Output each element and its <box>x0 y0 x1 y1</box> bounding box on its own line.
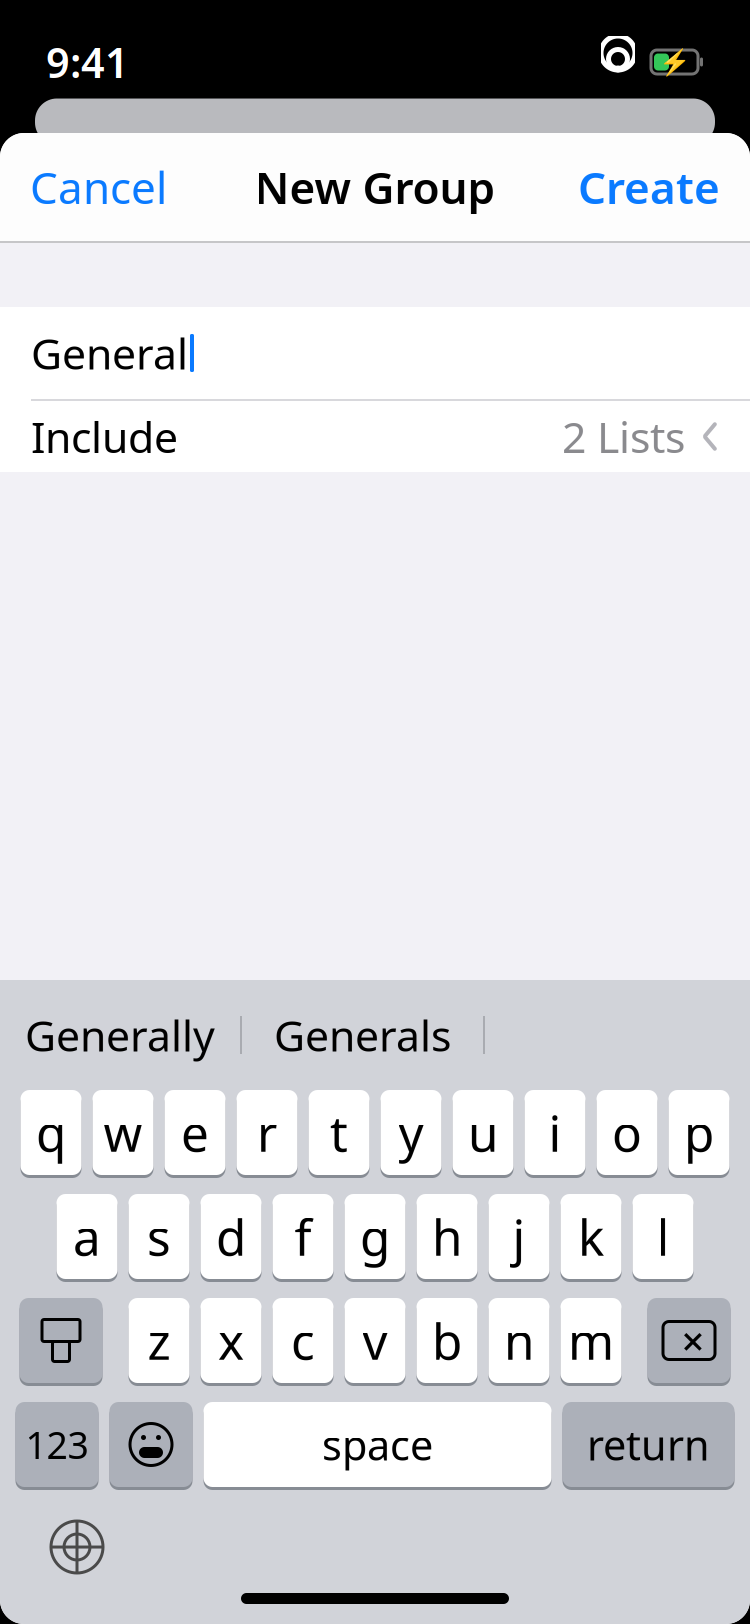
button[interactable]: 123 <box>15 1402 98 1490</box>
button[interactable]: y <box>380 1090 441 1178</box>
button[interactable]: j <box>488 1194 549 1282</box>
staticText: j <box>512 1204 525 1269</box>
button[interactable]: Generals <box>242 998 483 1072</box>
staticText: space <box>322 1417 433 1472</box>
button[interactable]: o <box>596 1090 657 1178</box>
staticText: 2 Lists <box>562 408 685 465</box>
staticText: o <box>612 1100 642 1165</box>
button[interactable]: Include <box>0 401 750 472</box>
button[interactable]: f <box>272 1194 333 1282</box>
button[interactable]: Create <box>548 136 750 238</box>
staticText: b <box>432 1308 462 1373</box>
button[interactable]: c <box>272 1298 333 1386</box>
staticText: l <box>656 1204 669 1269</box>
staticText: t <box>330 1100 348 1165</box>
staticText: g <box>360 1204 390 1269</box>
staticText: New Group <box>254 158 495 216</box>
button[interactable]: g <box>344 1194 405 1282</box>
staticText: y <box>398 1100 423 1165</box>
staticText: Generally <box>25 1007 215 1063</box>
button[interactable]: r <box>236 1090 297 1178</box>
staticText: s <box>147 1204 171 1269</box>
button[interactable]: h <box>416 1194 477 1282</box>
staticText: n <box>504 1308 534 1373</box>
staticText: c <box>291 1308 315 1373</box>
button[interactable]: Delete <box>647 1298 730 1386</box>
staticText: d <box>216 1204 246 1269</box>
button[interactable]: w <box>92 1090 153 1178</box>
button[interactable]: b <box>416 1298 477 1386</box>
button[interactable]: z <box>128 1298 189 1386</box>
staticText: m <box>568 1308 614 1373</box>
button[interactable]: Generally <box>0 998 240 1072</box>
button[interactable]: n <box>488 1298 549 1386</box>
staticText: e <box>181 1100 209 1165</box>
staticText: × <box>681 1314 704 1367</box>
staticText: v <box>362 1308 387 1373</box>
staticText: f <box>294 1204 311 1269</box>
staticText: i <box>548 1100 561 1165</box>
staticText: Include <box>31 408 178 465</box>
button[interactable]: space <box>203 1402 551 1490</box>
button[interactable]: x <box>200 1298 261 1386</box>
staticText: Create <box>578 158 720 216</box>
staticText: q <box>36 1100 66 1165</box>
button[interactable]: p <box>668 1090 729 1178</box>
button[interactable]: t <box>308 1090 369 1178</box>
staticText: a <box>73 1204 101 1269</box>
staticText: z <box>147 1308 170 1373</box>
staticText: k <box>578 1204 604 1269</box>
staticText: w <box>103 1100 142 1165</box>
staticText: Generals <box>274 1007 451 1063</box>
staticText: 123 <box>25 1420 88 1469</box>
button[interactable]: d <box>200 1194 261 1282</box>
staticText: ⚡ <box>658 47 690 76</box>
staticText: u <box>468 1100 498 1165</box>
button[interactable]: Next keyboard <box>42 1512 112 1582</box>
staticText: return <box>587 1417 710 1472</box>
button[interactable]: v <box>344 1298 405 1386</box>
button[interactable]: Cancel <box>0 136 197 238</box>
button[interactable]: l <box>632 1194 693 1282</box>
staticText: p <box>684 1100 714 1165</box>
button[interactable]: m <box>560 1298 621 1386</box>
button[interactable]: q <box>20 1090 81 1178</box>
button[interactable]: i <box>524 1090 585 1178</box>
staticText: h <box>432 1204 462 1269</box>
staticText: General <box>31 325 188 381</box>
staticText: 9:41 <box>46 35 129 89</box>
button[interactable]: Emoji <box>109 1402 192 1490</box>
button[interactable]: return <box>562 1402 734 1490</box>
staticText: Cancel <box>30 158 167 216</box>
staticText: x <box>218 1308 244 1373</box>
button[interactable]: a <box>56 1194 117 1282</box>
button[interactable]: e <box>164 1090 225 1178</box>
button[interactable]: u <box>452 1090 513 1178</box>
button[interactable]: Shift <box>19 1298 102 1386</box>
button[interactable]: k <box>560 1194 621 1282</box>
staticText: r <box>257 1100 277 1165</box>
button[interactable]: s <box>128 1194 189 1282</box>
